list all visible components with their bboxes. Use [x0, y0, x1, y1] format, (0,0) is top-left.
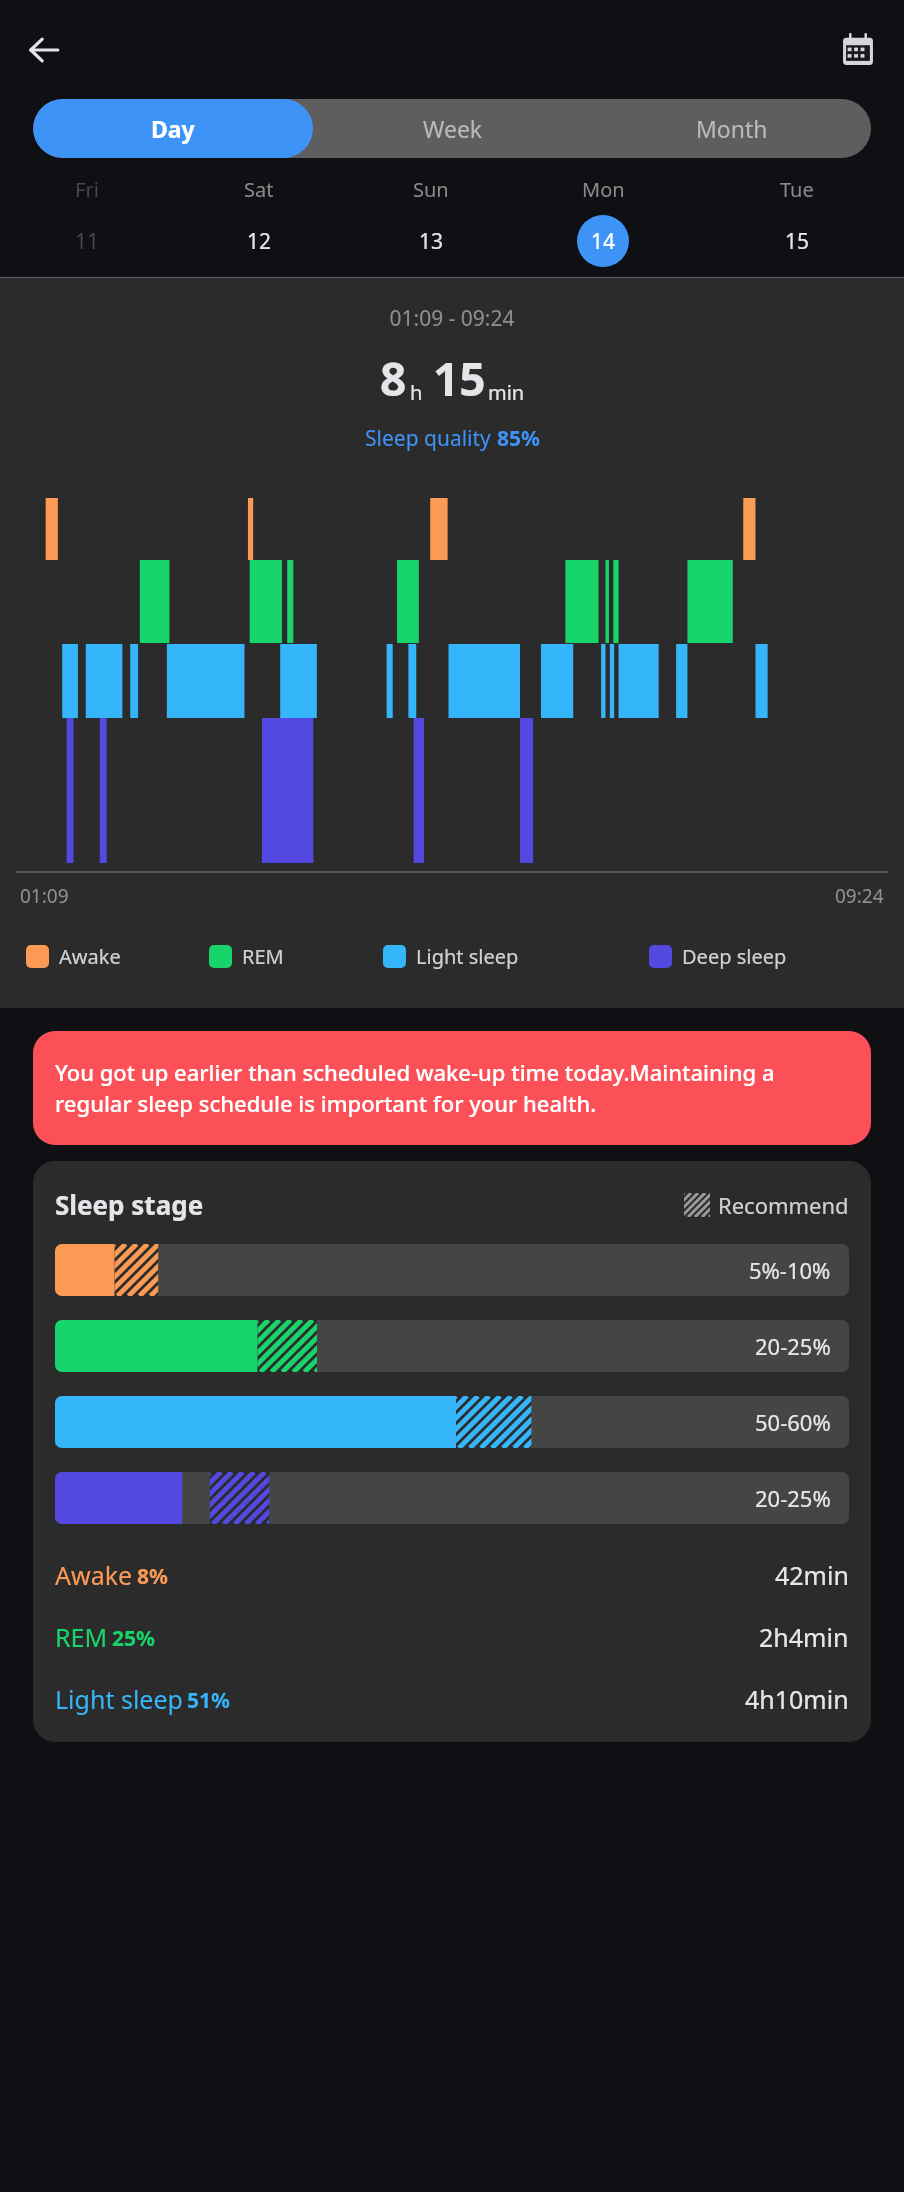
button[interactable]: REM — [55, 1620, 849, 1654]
staticText: Deep sleep — [682, 943, 787, 970]
staticText: REM — [242, 943, 284, 970]
staticText: 4h10min — [745, 1682, 849, 1716]
staticText: 8 — [380, 347, 407, 410]
staticText: 15 — [433, 347, 486, 410]
staticText: REM — [55, 1620, 108, 1654]
staticText: Day — [151, 113, 195, 144]
staticText: 5%-10% — [749, 1255, 831, 1285]
staticText: 13 — [419, 227, 444, 256]
staticText: Light sleep — [55, 1682, 183, 1716]
staticText: 50-60% — [755, 1407, 831, 1437]
staticText: 51% — [187, 1686, 230, 1715]
button[interactable]: Day — [33, 99, 313, 158]
staticText: 15 — [785, 227, 810, 256]
staticText: Sleep stage — [55, 1187, 204, 1222]
staticText: 2h4min — [759, 1620, 849, 1654]
staticText: Recommend — [718, 1190, 849, 1220]
staticText: Week — [423, 113, 483, 144]
staticText: Tue — [780, 176, 814, 203]
staticText: Light sleep — [416, 943, 519, 970]
button[interactable]: Awake — [55, 1558, 849, 1592]
button[interactable]: Sleep quality — [0, 424, 904, 453]
button[interactable]: Light sleep — [55, 1682, 849, 1716]
button[interactable]: 20-25% — [55, 1320, 849, 1372]
button[interactable]: 20-25% — [55, 1472, 849, 1524]
staticText: 42min — [775, 1558, 849, 1592]
staticText: 12 — [247, 227, 272, 256]
staticText: Awake — [59, 943, 121, 970]
button[interactable]: 50-60% — [55, 1396, 849, 1448]
button[interactable]: 5%-10% — [55, 1244, 849, 1296]
staticText: Fri — [75, 176, 99, 203]
staticText: 11 — [75, 227, 100, 256]
staticText: Month — [696, 113, 768, 144]
staticText: 20-25% — [755, 1483, 831, 1513]
button[interactable]: Fri — [0, 176, 173, 267]
button[interactable]: Week — [313, 99, 592, 158]
staticText: You got up earlier than scheduled wake-u… — [55, 1057, 849, 1119]
staticText: 09:24 — [835, 883, 884, 909]
button[interactable]: Sat — [173, 176, 345, 267]
staticText: 14 — [591, 227, 616, 256]
button[interactable]: Tue — [689, 176, 904, 267]
staticText: 85% — [497, 424, 540, 453]
staticText: Sun — [413, 176, 449, 203]
staticText: Mon — [582, 176, 625, 203]
button[interactable]: You got up earlier than scheduled wake-u… — [33, 1031, 871, 1145]
staticText: 20-25% — [755, 1331, 831, 1361]
staticText: 8% — [137, 1562, 168, 1591]
button[interactable]: Month — [592, 99, 871, 158]
staticText: min — [488, 379, 525, 406]
staticText: 25% — [112, 1624, 155, 1653]
staticText: 01:09 - 09:24 — [0, 304, 904, 333]
button[interactable]: Back — [16, 22, 72, 78]
button[interactable]: Calendar — [830, 22, 886, 78]
staticText: h — [410, 379, 423, 406]
staticText: Sat — [244, 176, 274, 203]
staticText: 01:09 — [20, 883, 69, 909]
staticText: Sleep quality — [365, 424, 497, 453]
button[interactable]: Sun — [345, 176, 517, 267]
staticText: Awake — [55, 1558, 133, 1592]
button[interactable]: Mon — [517, 176, 689, 267]
